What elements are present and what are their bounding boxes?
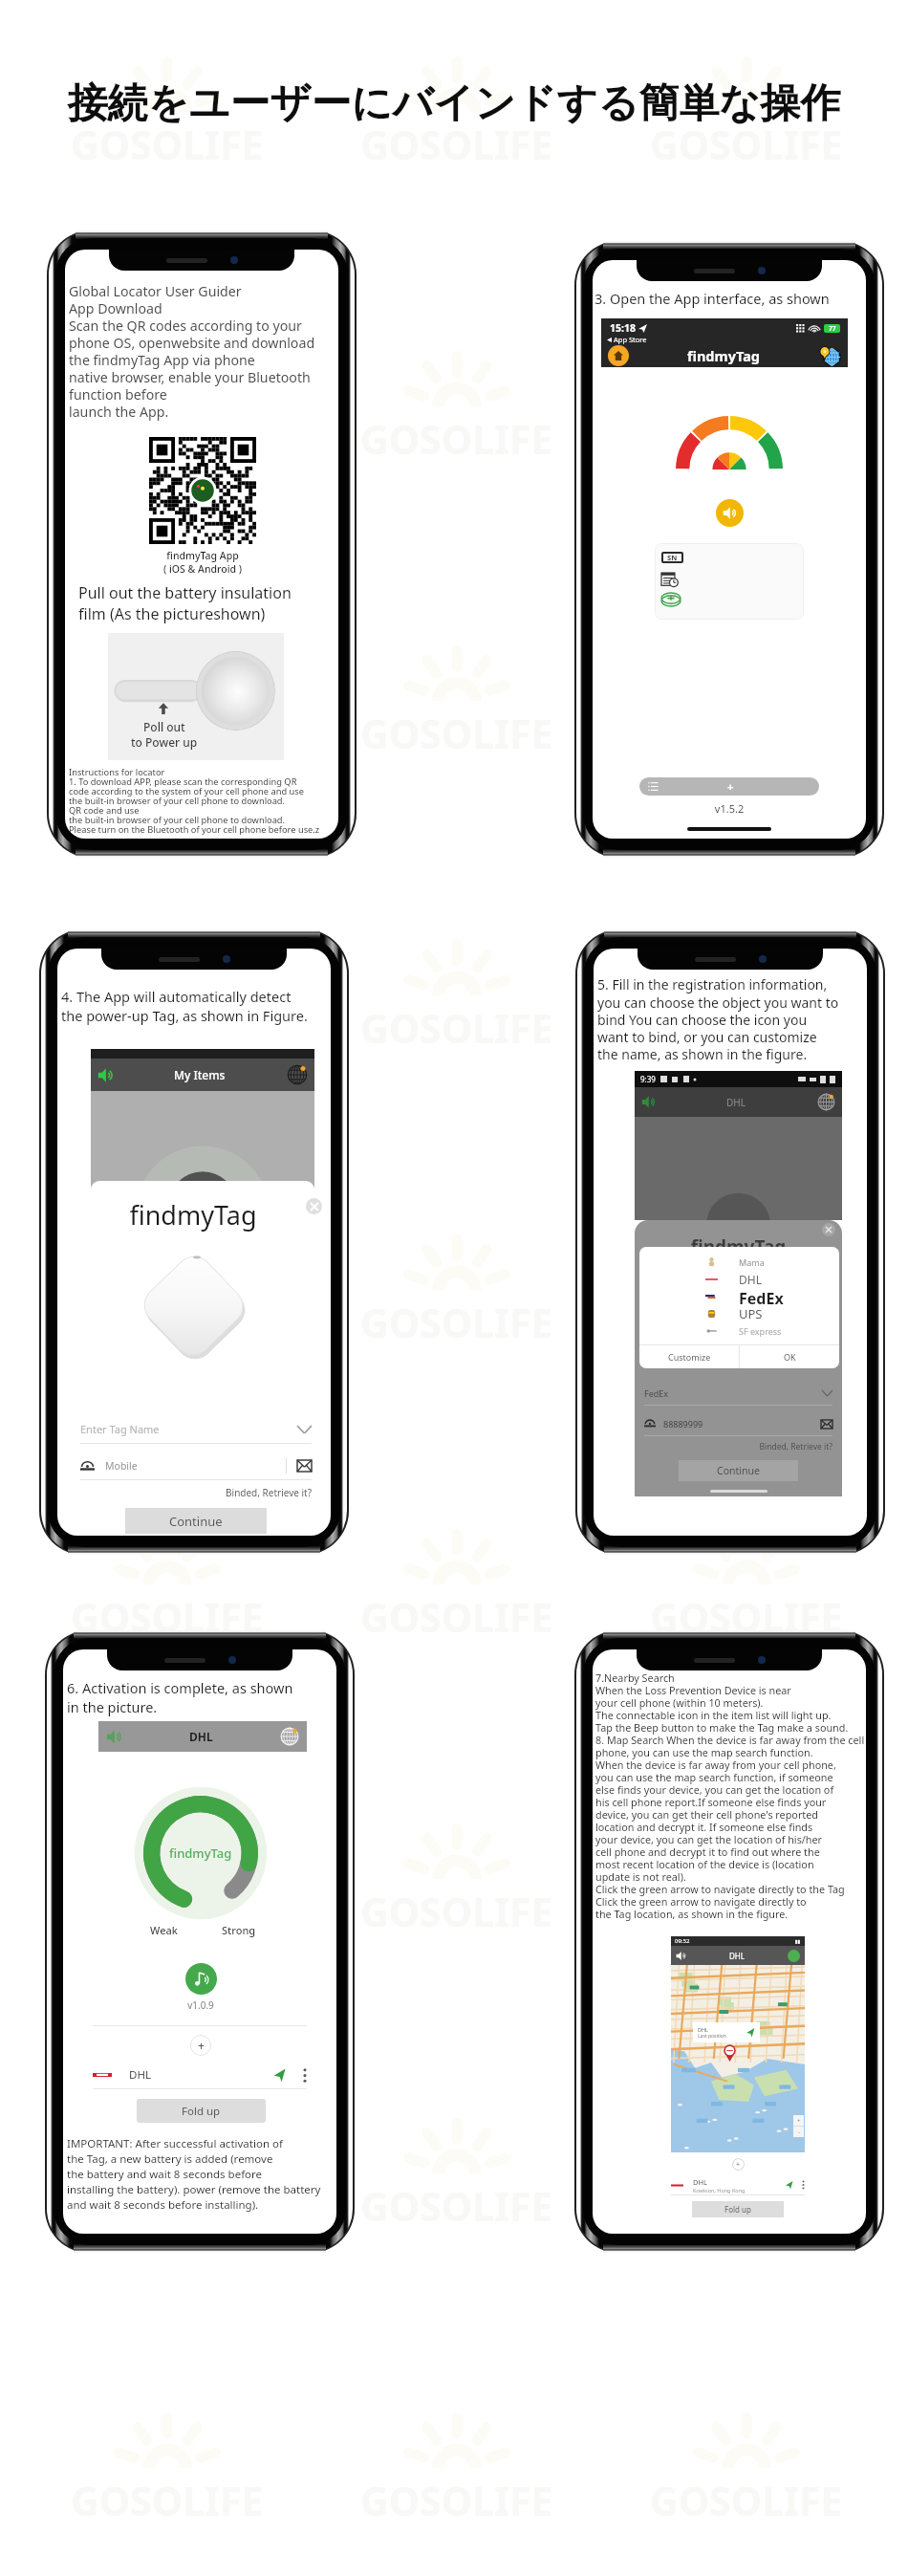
staticText: Binded, Retrieve it?: [80, 1486, 312, 1499]
staticText: OK: [784, 1351, 796, 1363]
staticText: SN: [667, 553, 678, 562]
staticText: -: [798, 2128, 800, 2136]
staticText: GOSOLIFE: [360, 2474, 553, 2527]
staticText: GOSOLIFE: [71, 1885, 264, 1938]
button[interactable]: Zoom in: [793, 2115, 804, 2126]
button[interactable]: Home: [608, 345, 629, 366]
staticText: Mama: [739, 1256, 765, 1268]
button[interactable]: Map: [819, 344, 842, 367]
staticText: GOSOLIFE: [360, 707, 553, 760]
staticText: Enter Tag Name: [80, 1422, 160, 1436]
button[interactable]: Close: [306, 1198, 322, 1214]
staticText: FedEx: [739, 1288, 784, 1305]
staticText: DHL: [729, 1951, 745, 1961]
staticText: FedEx: [644, 1387, 669, 1399]
staticText: GOSOLIFE: [360, 1296, 553, 1349]
staticText: GOSOLIFE: [360, 412, 553, 466]
staticText: GOSOLIFE: [71, 2474, 264, 2527]
staticText: 15:18: [610, 321, 636, 335]
staticText: Poll out: [143, 719, 185, 734]
staticText: 6. Activation is complete, as shown: [67, 1678, 293, 1697]
staticText: GOSOLIFE: [360, 118, 553, 171]
staticText: film (As the pictureshown): [78, 603, 266, 624]
staticText: UPS: [739, 1305, 763, 1322]
staticText: ( iOS & Android ): [69, 562, 336, 576]
staticText: Continue: [717, 1464, 760, 1477]
staticText: findmyTag App: [69, 549, 336, 562]
button[interactable]: DHL: [639, 1271, 839, 1288]
button[interactable]: Zoom out: [793, 2127, 804, 2137]
staticText: DHL: [693, 2177, 707, 2187]
button[interactable]: DHL: [93, 2062, 307, 2088]
button[interactable]: Continue: [125, 1508, 267, 1534]
staticText: +: [198, 2038, 205, 2053]
button[interactable]: Fold up: [137, 2099, 266, 2123]
staticText: GOSOLIFE: [650, 1590, 843, 1644]
staticText: App Store: [614, 335, 647, 344]
staticText: findmyTag: [635, 1234, 842, 1256]
button[interactable]: Fold up: [692, 2201, 784, 2217]
staticText: GOSOLIFE: [360, 1001, 553, 1055]
staticText: +: [797, 2117, 801, 2125]
staticText: DHL: [698, 2026, 708, 2033]
staticText: GOSOLIFE: [650, 412, 843, 466]
staticText: 77: [829, 324, 836, 333]
staticText: 88889999: [663, 1418, 703, 1430]
staticText: GOSOLIFE: [71, 2179, 264, 2233]
staticText: ▮▮: [795, 1938, 801, 1944]
staticText: +: [736, 2160, 741, 2170]
button[interactable]: Beep: [716, 499, 744, 527]
staticText: the power-up Tag, as shown in Figure.: [61, 1006, 308, 1025]
button[interactable]: FedEx: [639, 1288, 839, 1305]
staticText: Strong: [222, 1923, 256, 1937]
staticText: 4. The App will automatically detect: [61, 987, 292, 1006]
staticText: in the picture.: [67, 1697, 158, 1716]
staticText: DHL: [129, 2067, 151, 2083]
button[interactable]: UPS: [639, 1305, 839, 1322]
staticText: DHL: [189, 1729, 213, 1744]
staticText: GOSOLIFE: [650, 1885, 843, 1938]
button[interactable]: Continue: [679, 1460, 798, 1481]
button[interactable]: Mama: [639, 1254, 839, 1271]
staticText: GOSOLIFE: [71, 1296, 264, 1349]
staticText: +: [727, 779, 734, 794]
staticText: Binded, Retrieve it?: [644, 1441, 832, 1452]
staticText: IMPORTANT: After successful activation o…: [67, 2136, 321, 2213]
staticText: GOSOLIFE: [71, 1001, 264, 1055]
staticText: GOSOLIFE: [650, 2474, 843, 2527]
button[interactable]: Add: [190, 2035, 211, 2056]
button[interactable]: Customize: [639, 1345, 739, 1368]
staticText: DHL: [726, 1096, 746, 1109]
button[interactable]: Ring: [185, 1963, 217, 1995]
staticText: v1.0.9: [67, 1998, 335, 2012]
staticText: Fold up: [724, 2204, 751, 2215]
staticText: 5. Fill in the registration information,…: [597, 975, 839, 1063]
staticText: GOSOLIFE: [71, 118, 264, 171]
staticText: to Power up: [131, 734, 198, 750]
staticText: Global Locator User Guider App Download …: [69, 282, 315, 421]
button[interactable]: SF express: [639, 1322, 839, 1340]
staticText: Kowloon, Hong Kong: [693, 2187, 746, 2194]
staticText: GOSOLIFE: [360, 2179, 553, 2233]
staticText: Fold up: [182, 2104, 221, 2119]
staticText: 接続をユーザーにバインドする簡単な操作: [0, 78, 908, 129]
staticText: 09:52: [675, 1937, 690, 1945]
staticText: GOSOLIFE: [650, 118, 843, 171]
staticText: findmyTag: [61, 1197, 325, 1233]
staticText: 9:39: [640, 1074, 656, 1084]
staticText: Last position: [698, 2033, 726, 2040]
staticText: v1.5.2: [593, 801, 866, 816]
staticText: Weak: [150, 1923, 178, 1937]
staticText: Instructions for locator 1. To download …: [69, 766, 320, 835]
staticText: findmyTag: [169, 1845, 232, 1862]
staticText: findmyTag: [687, 346, 760, 365]
button[interactable]: OK: [740, 1345, 839, 1368]
button[interactable]: +: [639, 777, 819, 796]
staticText: GOSOLIFE: [360, 1885, 553, 1938]
button[interactable]: Close: [822, 1223, 835, 1236]
staticText: GOSOLIFE: [71, 707, 264, 760]
staticText: GOSOLIFE: [360, 1590, 553, 1644]
staticText: Pull out the battery insulation: [78, 582, 292, 603]
staticText: SF express: [739, 1325, 782, 1337]
